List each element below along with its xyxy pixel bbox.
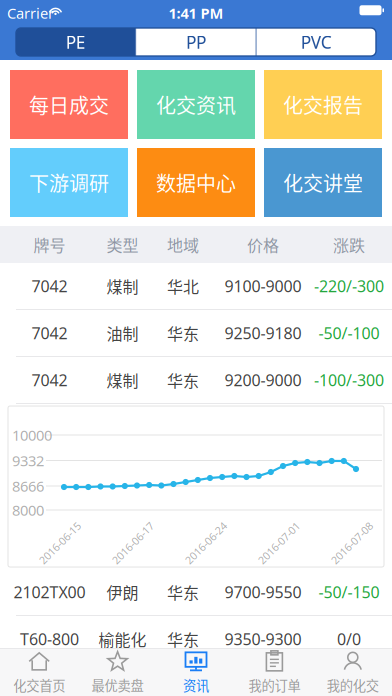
staticText: 7042 — [31, 322, 67, 344]
staticText: 价格 — [247, 233, 279, 256]
staticText: 煤制 — [106, 274, 138, 298]
staticText: 华东 — [167, 368, 199, 392]
staticText: 数据中心 — [156, 168, 236, 197]
staticText: Carrier — [7, 3, 54, 23]
button[interactable]: 数据中心 — [137, 148, 255, 217]
button[interactable]: 化交资讯 — [137, 70, 255, 139]
staticText: 0/0 — [337, 628, 361, 650]
staticText: 9100-9000 — [224, 275, 301, 297]
button[interactable]: PP — [136, 28, 256, 56]
staticText: 地域 — [167, 233, 199, 256]
staticText: 2016-06-24 — [179, 536, 233, 550]
staticText: -100/-300 — [314, 369, 384, 391]
staticText: 2016-06-17 — [106, 536, 160, 550]
staticText: 油制 — [106, 321, 138, 345]
button[interactable]: 资讯 — [157, 649, 235, 696]
staticText: 7042 — [31, 275, 67, 297]
staticText: 9332 — [12, 451, 44, 470]
staticText: 化交讲堂 — [283, 168, 363, 197]
staticText: PP — [186, 30, 206, 53]
staticText: 华北 — [167, 274, 199, 298]
staticText: 资讯 — [183, 675, 209, 695]
staticText: 最优卖盘 — [92, 675, 144, 695]
staticText: 10000 — [12, 425, 52, 445]
staticText: 牌号 — [33, 233, 65, 256]
staticText: 华东 — [167, 580, 199, 604]
staticText: PVC — [301, 30, 332, 53]
staticText: PE — [66, 30, 86, 53]
staticText: -220/-300 — [314, 275, 384, 297]
staticText: 伊朗 — [106, 580, 138, 604]
staticText: 类型 — [106, 233, 138, 256]
staticText: 下游调研 — [29, 168, 109, 197]
button[interactable]: 7042 — [0, 263, 392, 310]
staticText: 2016-07-01 — [252, 536, 306, 550]
staticText: -50/-150 — [318, 581, 379, 603]
staticText: 我的化交 — [327, 675, 379, 695]
staticText: 煤制 — [106, 368, 138, 392]
button[interactable]: T60-800 — [0, 616, 392, 663]
staticText: 1:41 PM — [168, 3, 223, 23]
staticText: 7042 — [31, 369, 67, 391]
staticText: -50/-100 — [318, 322, 379, 344]
staticText: 9350-9300 — [224, 628, 301, 650]
button[interactable]: 化交讲堂 — [264, 148, 382, 217]
button[interactable]: 下游调研 — [10, 148, 128, 217]
staticText: 涨跌 — [333, 233, 365, 256]
staticText: 9250-9180 — [224, 322, 301, 344]
staticText: 华东 — [167, 321, 199, 345]
staticText: 8666 — [12, 476, 44, 496]
staticText: 2016-06-15 — [33, 536, 87, 550]
button[interactable]: 我的化交 — [314, 649, 392, 696]
staticText: 2102TX00 — [13, 581, 85, 603]
staticText: 华东 — [167, 627, 199, 651]
button[interactable]: PVC — [257, 28, 376, 56]
button[interactable]: 2102TX00 — [0, 569, 392, 616]
button[interactable]: 化交首页 — [0, 649, 78, 696]
staticText: 每日成交 — [29, 90, 109, 119]
button[interactable]: 最优卖盘 — [78, 649, 157, 696]
button[interactable]: 每日成交 — [10, 70, 128, 139]
staticText: 化交资讯 — [156, 90, 236, 119]
staticText: 9700-9550 — [224, 581, 301, 603]
staticText: 化交报告 — [283, 90, 363, 119]
button[interactable]: 7042 — [0, 357, 392, 404]
staticText: 2016-07-08 — [325, 536, 379, 550]
staticText: 8000 — [12, 500, 44, 520]
staticText: 我的订单 — [248, 675, 300, 695]
button[interactable]: 我的订单 — [235, 649, 314, 696]
button[interactable]: 7042 — [0, 310, 392, 357]
button[interactable]: 化交报告 — [264, 70, 382, 139]
staticText: 化交首页 — [13, 675, 65, 695]
button[interactable]: PE — [16, 28, 135, 56]
staticText: 榆能化 — [98, 627, 146, 651]
staticText: T60-800 — [20, 628, 79, 650]
staticText: 9200-9000 — [224, 369, 301, 391]
